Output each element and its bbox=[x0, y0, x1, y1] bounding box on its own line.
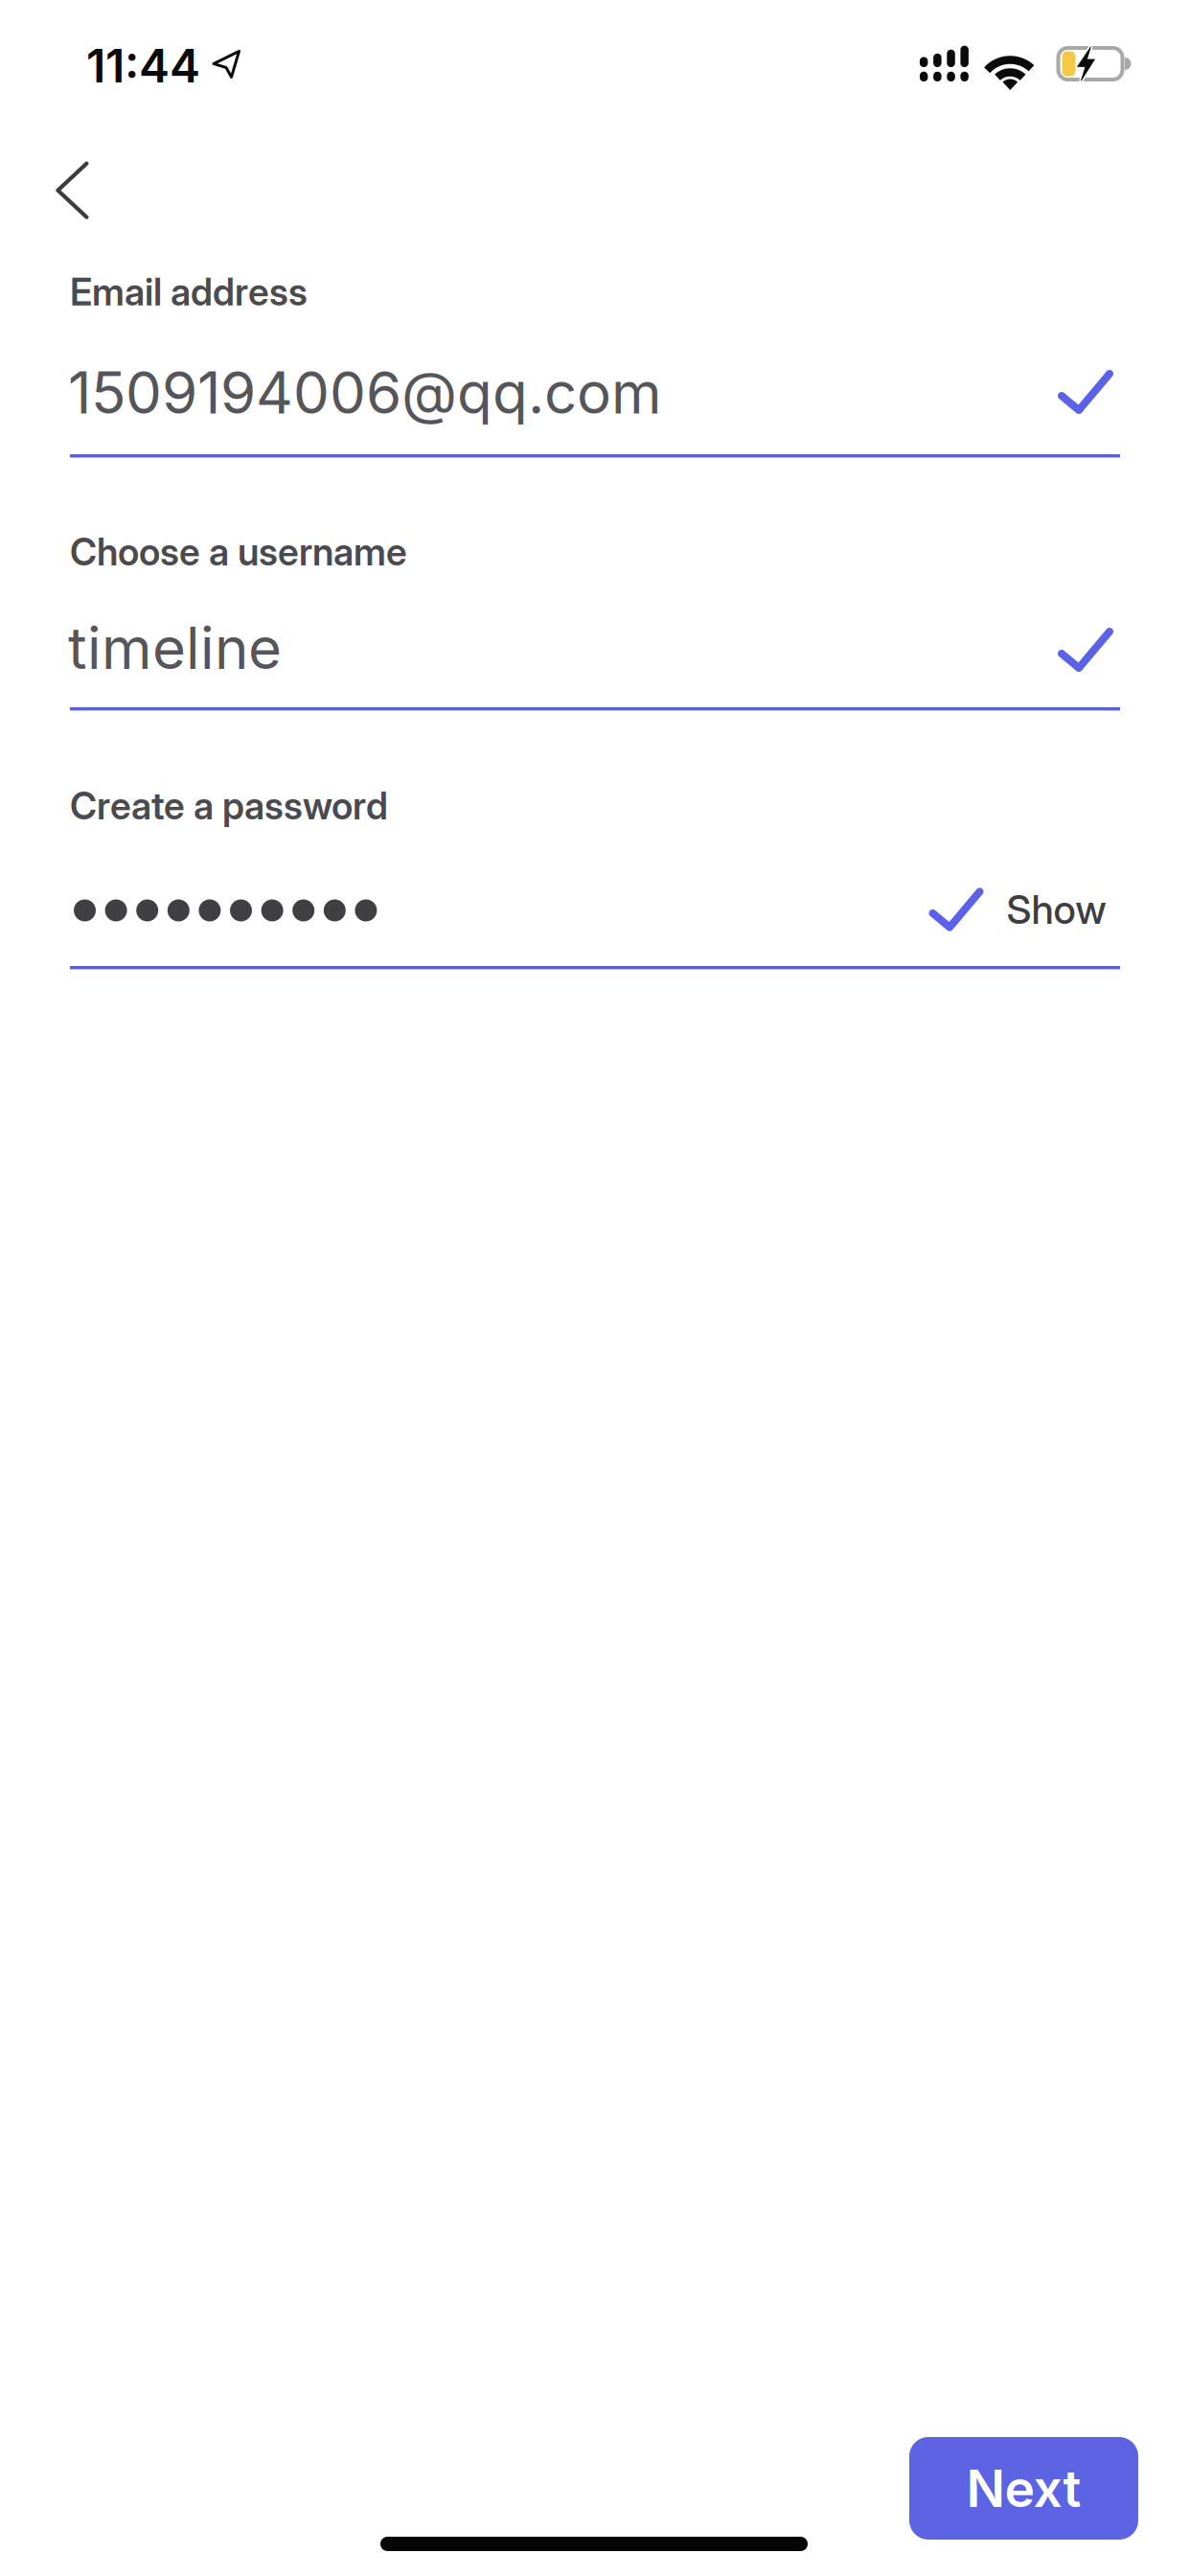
staticText: Choose a username bbox=[70, 530, 407, 574]
staticText: Email address bbox=[70, 270, 308, 315]
button[interactable]: Email address field bbox=[68, 331, 1122, 485]
button[interactable]: Username field bbox=[68, 584, 1122, 738]
staticText: timeline bbox=[68, 613, 282, 683]
button[interactable]: Show bbox=[929, 885, 1106, 933]
staticText: 1509194006@qq.com bbox=[68, 358, 662, 427]
staticText: 11:44 bbox=[86, 38, 200, 94]
staticText: Show bbox=[1006, 885, 1106, 933]
button[interactable]: Back bbox=[55, 161, 89, 220]
staticText: Create a password bbox=[70, 784, 388, 828]
button[interactable]: Password field bbox=[68, 843, 1122, 996]
staticText: Next bbox=[966, 2457, 1081, 2519]
button[interactable]: Next bbox=[909, 2437, 1138, 2540]
